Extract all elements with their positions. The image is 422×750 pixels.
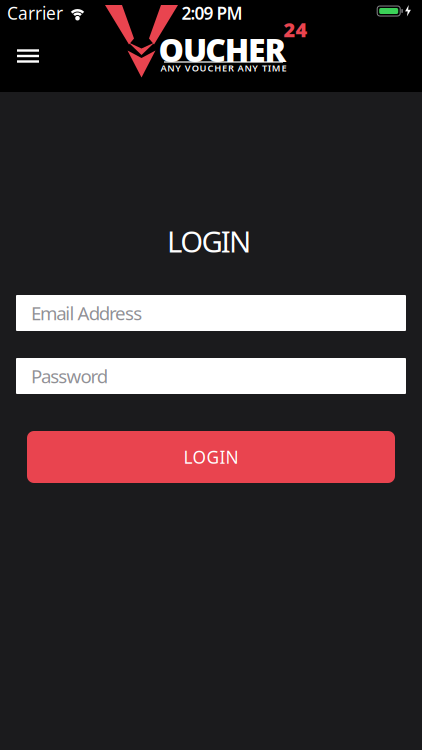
staticText: 24: [283, 16, 307, 43]
button[interactable]: Password: [16, 358, 406, 394]
staticText: LOGIN: [183, 445, 238, 468]
staticText: LOGIN: [167, 221, 251, 260]
button[interactable]: Email Address: [16, 295, 406, 331]
button[interactable]: LOGIN: [27, 431, 395, 483]
staticText: Email Address: [31, 301, 142, 325]
staticText: 2:09 PM: [181, 1, 242, 24]
staticText: OUCHER: [158, 28, 286, 71]
button[interactable]: Menu: [6, 38, 50, 74]
staticText: ANY VOUCHER ANY TIME: [160, 62, 286, 74]
staticText: Password: [31, 364, 108, 388]
staticText: Carrier: [7, 1, 63, 24]
